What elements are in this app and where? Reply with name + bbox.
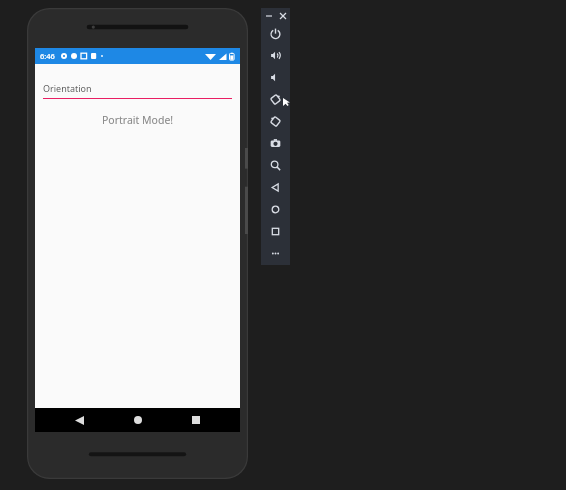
button[interactable]: Minimize	[263, 10, 274, 21]
button[interactable]: Take screenshot	[261, 132, 290, 154]
button[interactable]: More	[261, 242, 290, 264]
button[interactable]: Overview	[261, 220, 290, 242]
button[interactable]: Home	[261, 198, 290, 220]
staticText: Portrait Mode!	[102, 113, 174, 127]
button[interactable]: Close	[277, 10, 288, 21]
button[interactable]: Rotate right	[261, 110, 290, 132]
button[interactable]: Orientation	[43, 82, 232, 99]
button[interactable]: Volume up	[261, 44, 290, 66]
staticText: Orientation	[43, 82, 92, 94]
button[interactable]: Back	[261, 176, 290, 198]
button[interactable]: Volume down	[261, 66, 290, 88]
button[interactable]: Zoom	[261, 154, 290, 176]
button[interactable]: Home	[124, 408, 152, 432]
button[interactable]: Rotate left	[261, 88, 290, 110]
button[interactable]: Recent apps	[182, 408, 210, 432]
button[interactable]: Back	[65, 408, 93, 432]
button[interactable]: Power	[261, 22, 290, 44]
staticText: 6:46	[40, 51, 55, 61]
